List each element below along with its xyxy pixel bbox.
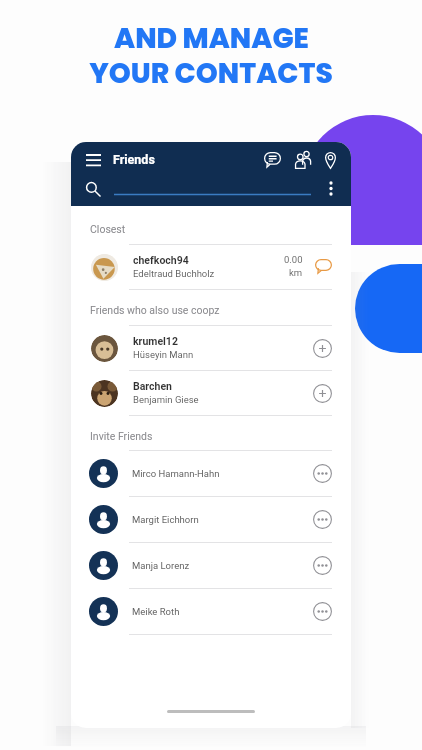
staticText: Manja Lorenz xyxy=(132,560,313,571)
button[interactable]: Search xyxy=(81,177,105,201)
button[interactable]: More options xyxy=(313,510,332,529)
button[interactable]: Add friend xyxy=(313,384,332,403)
button[interactable]: Chats xyxy=(260,148,284,172)
staticText: Friends who also use coopz xyxy=(90,304,220,316)
staticText: Hüseyin Mann xyxy=(133,349,194,360)
staticText: 0.00 xyxy=(284,254,303,265)
button[interactable]: More options xyxy=(313,602,332,621)
button[interactable]: More options xyxy=(313,464,332,483)
staticText: krumel12 xyxy=(133,335,178,347)
staticText: km xyxy=(289,267,303,278)
staticText: AND MANAGE xyxy=(114,19,309,58)
staticText: YOUR CONTACTS xyxy=(89,54,333,93)
staticText: chefkoch94 xyxy=(133,254,189,266)
staticText: Friends xyxy=(113,152,155,167)
button[interactable]: More options xyxy=(320,177,342,199)
button[interactable]: Meike Roth xyxy=(71,589,351,634)
button[interactable]: Open navigation menu xyxy=(82,148,104,170)
staticText: Meike Roth xyxy=(132,606,313,617)
button[interactable]: krumel12 xyxy=(71,326,351,370)
button[interactable]: More options xyxy=(313,556,332,575)
button[interactable]: Message xyxy=(314,257,332,275)
button[interactable]: Manja Lorenz xyxy=(71,543,351,588)
button[interactable]: Contacts xyxy=(291,148,315,172)
staticText: Barchen xyxy=(133,380,172,392)
staticText: Mirco Hamann-Hahn xyxy=(132,468,313,479)
button[interactable]: chefkoch94 xyxy=(71,245,351,289)
staticText: Edeltraud Buchholz xyxy=(133,268,215,279)
staticText: Closest xyxy=(90,223,126,235)
staticText: Margit Eichhorn xyxy=(132,514,313,525)
button[interactable]: Mirco Hamann-Hahn xyxy=(71,451,351,496)
staticText: Benjamin Giese xyxy=(133,394,199,405)
button[interactable]: Margit Eichhorn xyxy=(71,497,351,542)
button[interactable]: Location xyxy=(318,148,342,172)
button[interactable]: Barchen xyxy=(71,371,351,415)
button[interactable]: Add friend xyxy=(313,339,332,358)
staticText: Invite Friends xyxy=(90,430,153,442)
